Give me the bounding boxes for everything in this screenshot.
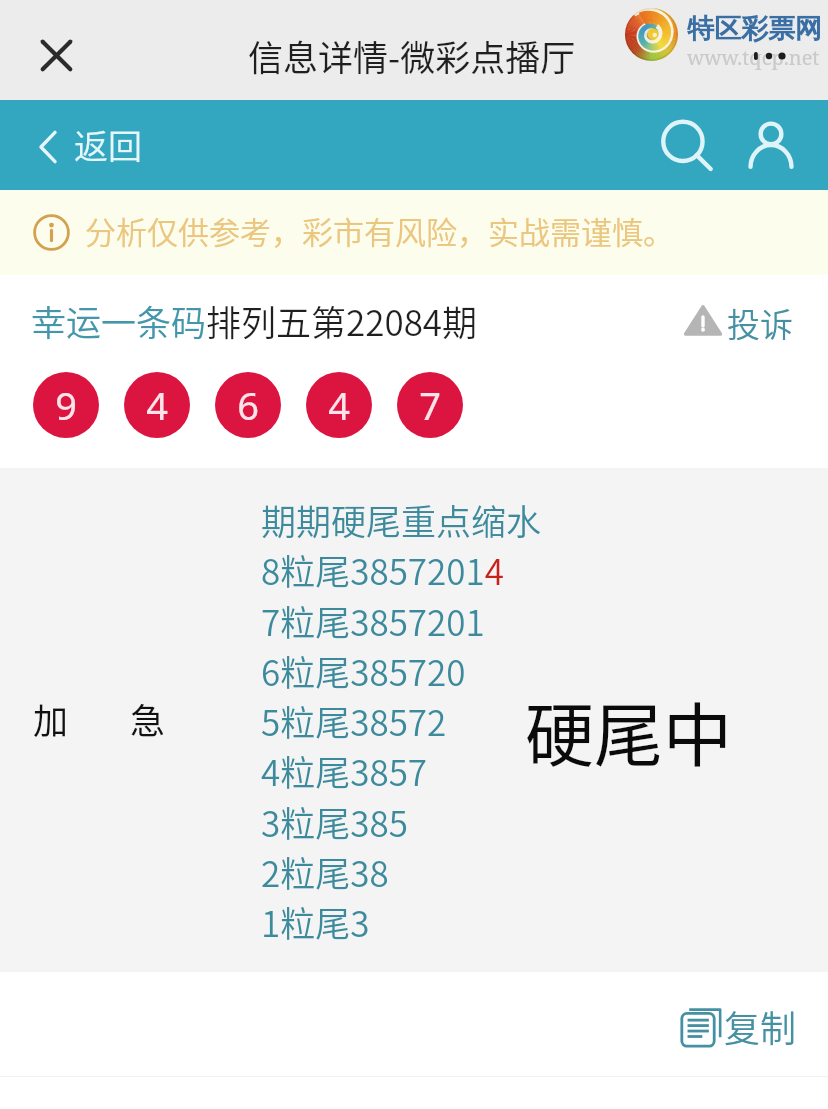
button[interactable]: 投诉 (681, 299, 793, 345)
staticText: 硬尾中 (525, 681, 732, 781)
staticText: 6 (237, 379, 259, 431)
button[interactable]: 6粒尾385720 (261, 645, 466, 696)
button[interactable]: 1粒尾3 (261, 896, 370, 947)
button[interactable]: 8粒尾38572014 (261, 544, 504, 595)
button[interactable]: 6 (215, 372, 281, 438)
button[interactable]: 期期硬尾重点缩水 (261, 494, 542, 545)
staticText: 特区彩票网 (687, 12, 822, 46)
button[interactable]: 幸运一条码排列五第22084期 (31, 295, 478, 346)
staticText: 复制 (724, 1000, 797, 1052)
button[interactable]: 返回 (37, 119, 142, 175)
button[interactable]: 2粒尾38 (261, 846, 389, 897)
staticText: 分析仅供参考，彩市有风险，实战需谨慎。 (85, 208, 674, 253)
button[interactable]: 9 (33, 372, 99, 438)
button[interactable]: 4粒尾3857 (261, 745, 428, 796)
button[interactable]: 5粒尾38572 (261, 695, 447, 746)
button[interactable]: 4 (124, 372, 190, 438)
staticText: 信息详情-微彩点播厅 (248, 30, 576, 81)
staticText: 7 (419, 379, 441, 431)
button[interactable]: 4 (306, 372, 372, 438)
button[interactable]: Close (29, 28, 84, 83)
button[interactable]: 复制 (681, 1000, 797, 1052)
button[interactable]: 7粒尾3857201 (261, 595, 485, 646)
staticText: www.tqcp.net (687, 44, 820, 71)
staticText: 9 (55, 379, 77, 431)
button[interactable]: 7 (397, 372, 463, 438)
button[interactable]: 3粒尾385 (261, 796, 408, 847)
staticText: 4 (146, 379, 168, 431)
staticText: 投诉 (727, 299, 793, 345)
staticText: 急 (130, 693, 166, 744)
staticText: 返回 (74, 120, 142, 169)
button[interactable]: Search (655, 113, 719, 177)
staticText: 4 (328, 379, 350, 431)
button[interactable]: Account (739, 113, 803, 177)
staticText: 加 (33, 693, 69, 744)
